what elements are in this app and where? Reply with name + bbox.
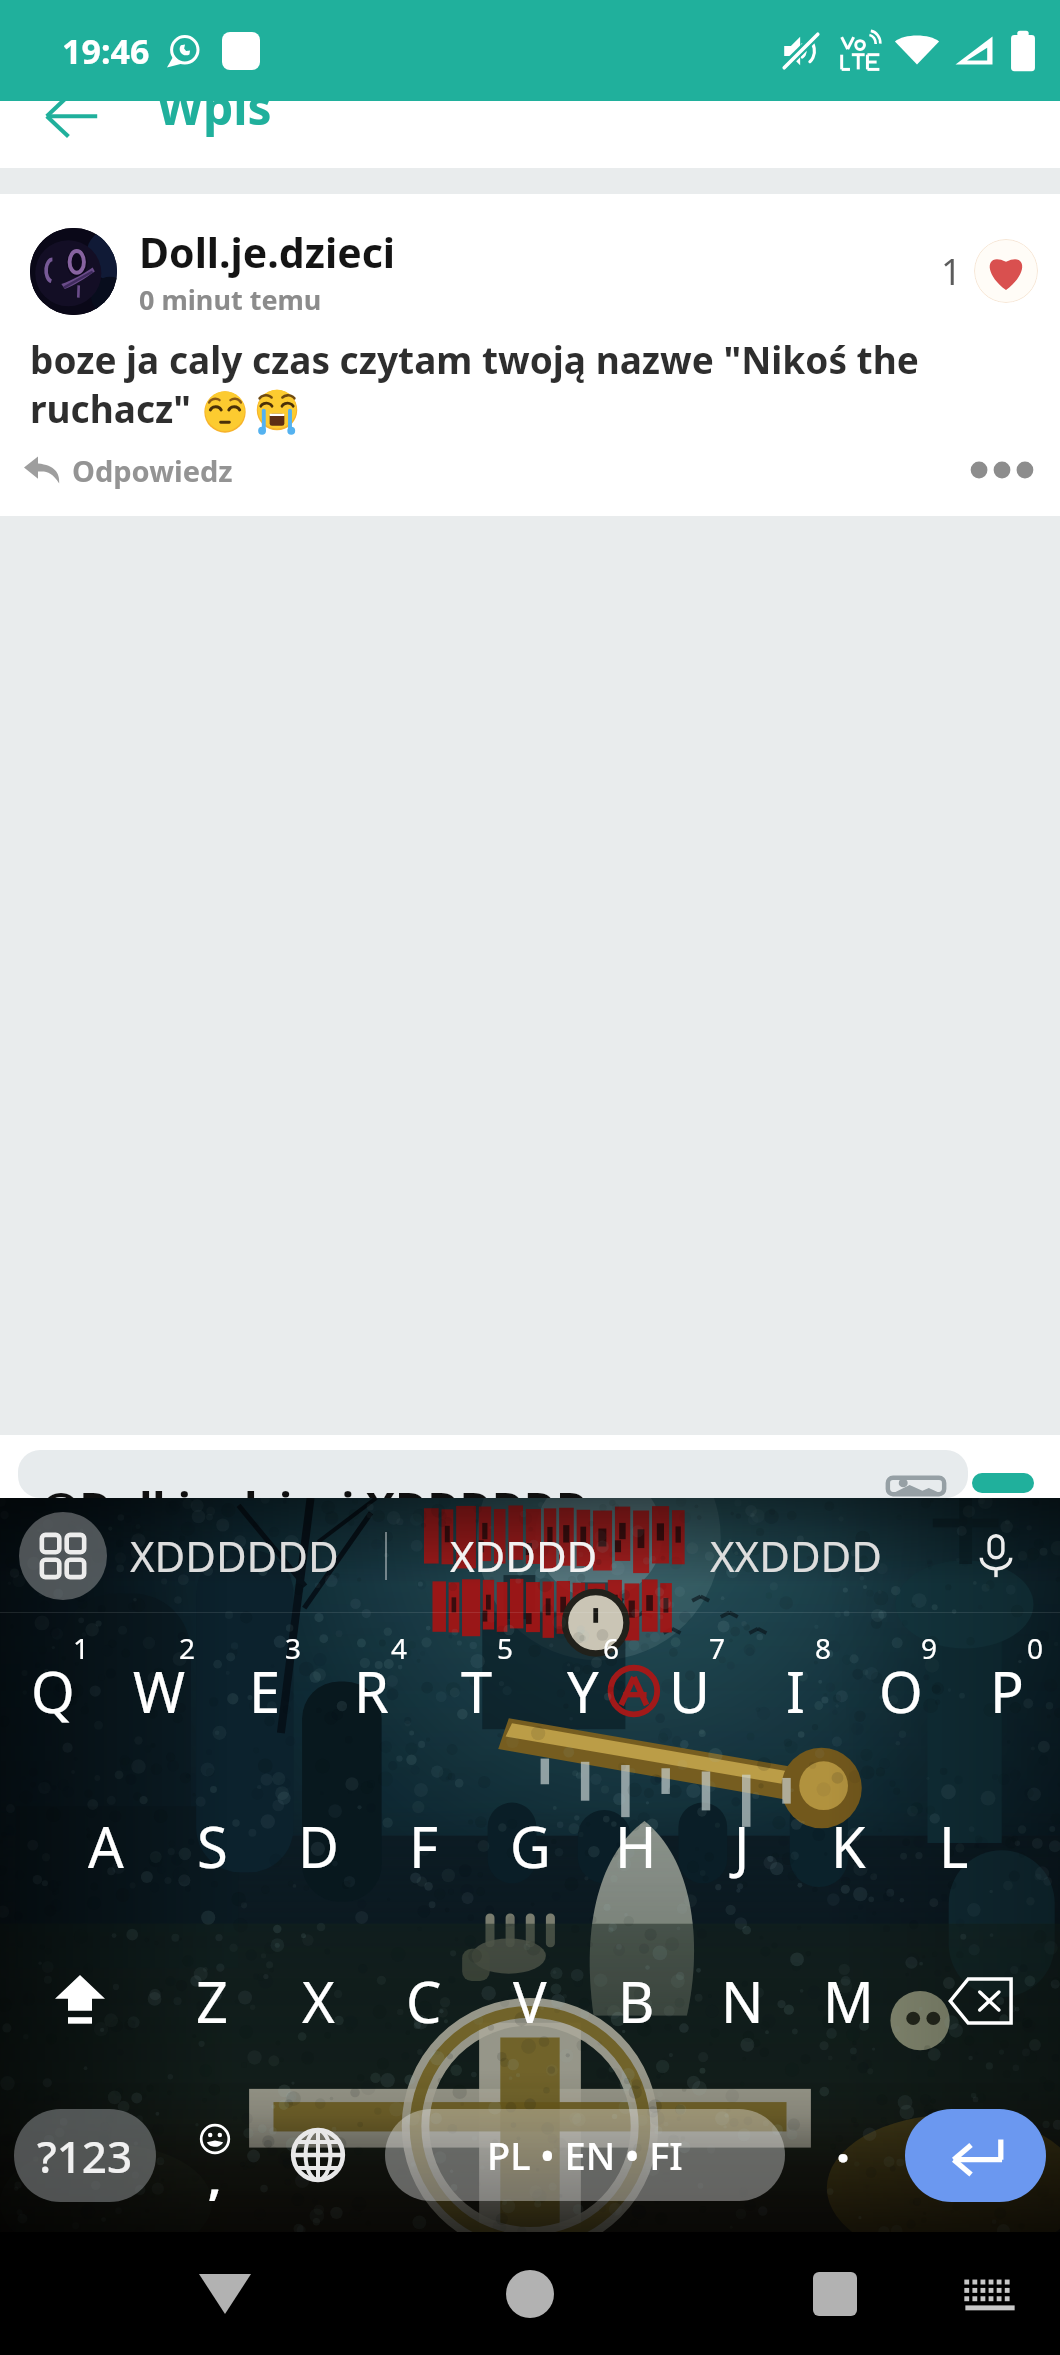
button[interactable]: ?123 [14,2109,156,2202]
staticText: 3 [285,1629,302,1667]
button[interactable]: . [800,2112,886,2198]
staticText: U [669,1653,710,1729]
staticText: A [88,1808,124,1884]
staticText: G [510,1808,551,1884]
button[interactable]: F [371,1768,477,1923]
staticText: K [831,1808,866,1884]
staticText: T [461,1653,493,1729]
button[interactable]: S [159,1768,265,1923]
staticText: R [354,1653,389,1729]
staticText: 7 [709,1629,726,1667]
button[interactable]: Y [530,1613,636,1768]
staticText: XDDDDDD [130,1527,339,1584]
button[interactable]: Back [42,91,102,151]
button[interactable]: B [583,1923,689,2078]
button[interactable]: V [477,1923,583,2078]
button[interactable]: XXDDDD [810,1527,982,1584]
staticText: XDDDD [450,1527,598,1584]
staticText: S [197,1808,228,1884]
staticText: . [836,2109,851,2177]
button[interactable]: O [848,1613,954,1768]
staticText: Y [567,1653,599,1729]
button[interactable]: T [424,1613,530,1768]
staticText: 2 [179,1629,196,1667]
staticText: ?123 [37,2126,133,2186]
button[interactable]: Recents [795,2254,875,2334]
staticText: H [615,1808,657,1884]
staticText: Z [196,1963,229,2039]
staticText: XXDDDD [710,1527,882,1584]
staticText: M [823,1963,874,2039]
staticText: 19:46 [62,28,150,74]
button[interactable]: XDDDD [530,1527,678,1584]
staticText: L [939,1808,969,1884]
button[interactable]: R [318,1613,424,1768]
button[interactable]: L [901,1768,1007,1923]
staticText: D [298,1808,339,1884]
button[interactable]: C [371,1923,477,2078]
staticText: B [618,1963,655,2039]
button[interactable]: Attach image [884,1474,948,1498]
button[interactable]: Enter [905,2109,1046,2202]
button[interactable]: N [689,1923,795,2078]
button[interactable]: W [106,1613,212,1768]
staticText: boze ja caly czas czytam twoją nazwe "Ni… [30,334,919,384]
staticText: 1 [73,1629,90,1667]
button[interactable]: More options [970,438,1034,502]
staticText: Q [31,1653,75,1729]
button[interactable]: J [689,1768,795,1923]
button[interactable]: G [477,1768,583,1923]
button[interactable]: H [583,1768,689,1923]
staticText: I [786,1653,805,1729]
staticText: Wpis [157,74,272,139]
staticText: J [734,1808,750,1884]
button[interactable] [30,228,117,315]
staticText: C [406,1963,442,2039]
staticText: 1 [941,247,962,296]
staticText: , [208,2146,222,2209]
button[interactable]: X [265,1923,371,2078]
button[interactable]: E [212,1613,318,1768]
staticText: V [513,1963,547,2039]
button[interactable]: Voice input [968,1528,1024,1584]
button[interactable]: K [795,1768,901,1923]
staticText: 8 [815,1629,832,1667]
button[interactable]: Q [0,1613,106,1768]
staticText: P [990,1653,1024,1729]
button[interactable]: , [172,2112,258,2198]
button[interactable]: Switch keyboard [950,2254,1030,2334]
staticText: N [721,1963,764,2039]
staticText: 4 [391,1629,408,1667]
staticText: W [133,1653,186,1729]
button[interactable]: A [53,1768,159,1923]
staticText: 9 [921,1629,938,1667]
button[interactable]: Home [490,2254,570,2334]
button[interactable]: Back [185,2254,265,2334]
button[interactable]: Switch language [276,2113,360,2197]
staticText: 0 minut temu [139,281,322,318]
staticText: @Doll.je.dzieci XDDDDDD [40,1478,589,1498]
button[interactable]: Space [385,2109,785,2201]
button[interactable]: P [954,1613,1060,1768]
button[interactable]: Z [159,1923,265,2078]
button[interactable]: 1 [941,239,1038,303]
staticText: E [249,1653,281,1729]
staticText: Odpowiedz [72,451,233,490]
staticText: 5 [497,1629,514,1667]
button[interactable]: Clipboard [19,1512,107,1600]
staticText: 0 [1027,1629,1044,1667]
button[interactable]: Backspace [901,1923,1060,2078]
button[interactable]: XDDDDDD [245,1527,454,1584]
staticText: 6 [603,1629,620,1667]
staticText: PL • EN • FI [487,2129,683,2181]
staticText: X [302,1963,335,2039]
button[interactable]: I [742,1613,848,1768]
button[interactable]: @Doll.je.dzieci XDDDDDD [18,1450,968,1498]
button[interactable]: U [636,1613,742,1768]
staticText: Doll.je.dzieci [139,224,396,280]
staticText: F [409,1808,439,1884]
button[interactable]: D [265,1768,371,1923]
button[interactable]: M [795,1923,901,2078]
button[interactable]: Shift [0,1923,159,2078]
button[interactable]: Odpowiedz [22,450,233,490]
